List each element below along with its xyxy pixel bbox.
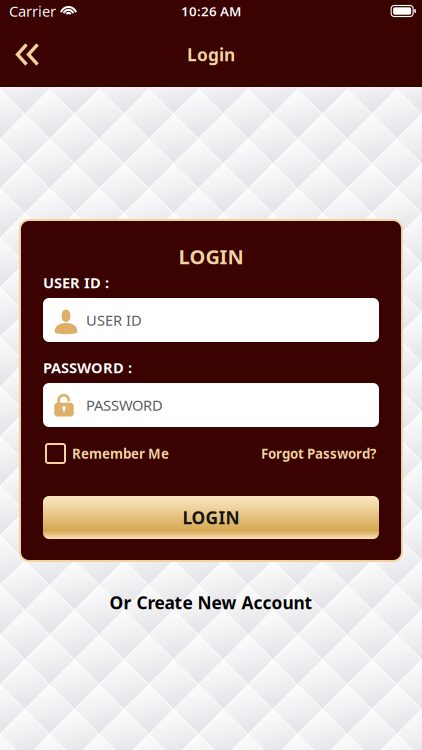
staticText: Remember Me <box>72 445 169 462</box>
staticText: PASSWORD <box>86 395 163 415</box>
staticText: LOGIN <box>178 243 243 270</box>
staticText: USER ID : <box>43 273 109 292</box>
staticText: USER ID <box>86 310 142 330</box>
button[interactable]: LOGIN <box>43 496 379 539</box>
staticText: Login <box>187 43 235 66</box>
button[interactable]: Remember Me <box>43 444 169 463</box>
staticText: Or Create New Account <box>109 591 312 614</box>
button[interactable]: Forgot Password? <box>261 445 379 462</box>
staticText: PASSWORD : <box>43 358 132 377</box>
button[interactable]: Or Create New Account <box>109 591 312 614</box>
button[interactable]: Back <box>0 32 55 76</box>
staticText: 10:26 AM <box>181 2 241 20</box>
button[interactable]: USER ID <box>43 298 379 342</box>
button[interactable]: PASSWORD <box>43 383 379 427</box>
staticText: LOGIN <box>182 506 239 529</box>
staticText: Carrier <box>9 1 56 21</box>
staticText: Forgot Password? <box>261 445 376 462</box>
